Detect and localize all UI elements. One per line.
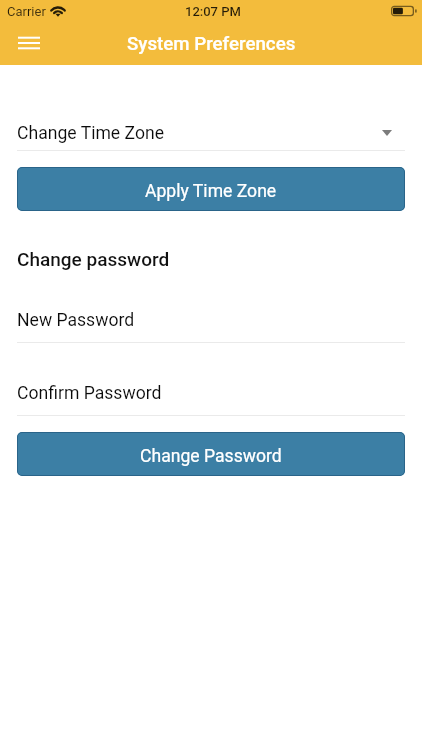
button[interactable]: Apply Time Zone <box>17 167 405 211</box>
staticText: Change Password <box>140 446 282 467</box>
staticText: Apply Time Zone <box>145 181 277 202</box>
staticText: 12:07 PM <box>185 4 241 19</box>
button[interactable]: Change Password <box>17 432 405 476</box>
staticText: Change password <box>17 248 170 270</box>
staticText: Change Time Zone <box>17 123 164 144</box>
button[interactable]: New Password field <box>17 304 405 336</box>
button[interactable]: Change Time Zone selector <box>17 117 405 149</box>
staticText: Carrier <box>7 4 46 19</box>
button[interactable]: Open navigation menu <box>11 25 47 61</box>
staticText: New Password <box>17 310 135 331</box>
staticText: Confirm Password <box>17 383 162 404</box>
staticText: System Preferences <box>127 33 296 55</box>
button[interactable]: Confirm Password field <box>17 377 405 409</box>
